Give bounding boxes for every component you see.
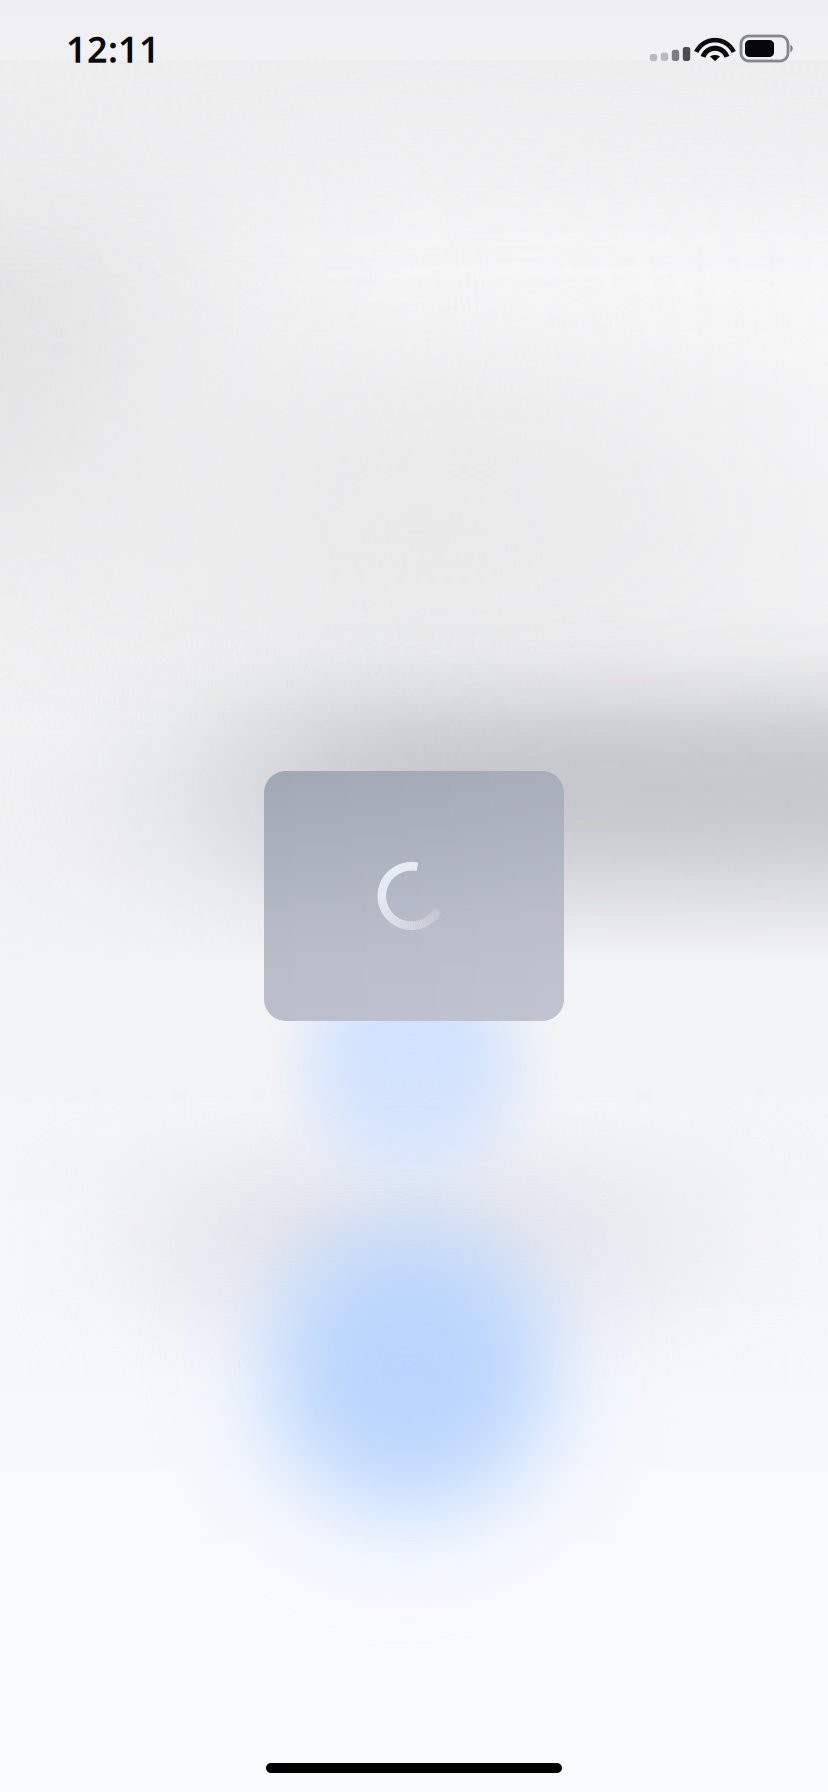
staticText: 12:11 — [66, 25, 160, 73]
